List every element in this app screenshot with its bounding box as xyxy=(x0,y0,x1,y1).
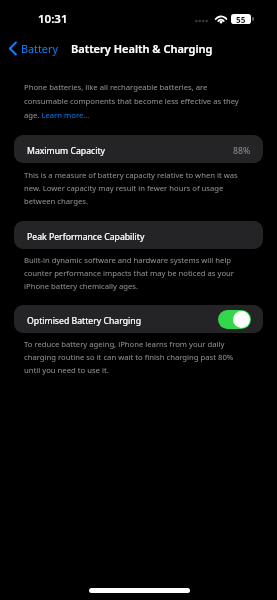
staticText: 10:31 xyxy=(38,11,68,27)
staticText: 55 xyxy=(236,14,246,24)
button[interactable]: Maximum Capacity xyxy=(14,135,263,163)
staticText: This is a measure of battery capacity re… xyxy=(24,170,242,206)
staticText: 88% xyxy=(233,145,251,157)
staticText: Battery xyxy=(21,41,58,56)
button[interactable]: Optimised Battery Charging, on xyxy=(218,310,251,329)
button[interactable]: Peak Performance Capability xyxy=(14,221,263,249)
staticText: Maximum Capacity xyxy=(27,145,106,157)
other: Wi-Fi xyxy=(214,13,228,24)
staticText: Peak Performance Capability xyxy=(27,231,145,243)
button[interactable]: Phone batteries, like all rechargeable b… xyxy=(24,82,246,120)
staticText: Optimised Battery Charging xyxy=(27,315,142,327)
staticText: Built-in dynamic software and hardware s… xyxy=(24,255,242,291)
staticText: Phone batteries, like all rechargeable b… xyxy=(24,82,246,120)
button[interactable]: Back xyxy=(6,38,60,58)
button[interactable]: Optimised Battery Charging xyxy=(14,305,263,333)
staticText: Battery Health & Charging xyxy=(71,41,213,56)
other: Cellular signal xyxy=(195,16,208,24)
other: Battery 55 percent xyxy=(231,14,251,24)
staticText: To reduce battery ageing, iPhone learns … xyxy=(24,339,242,375)
other: Back xyxy=(8,41,17,56)
